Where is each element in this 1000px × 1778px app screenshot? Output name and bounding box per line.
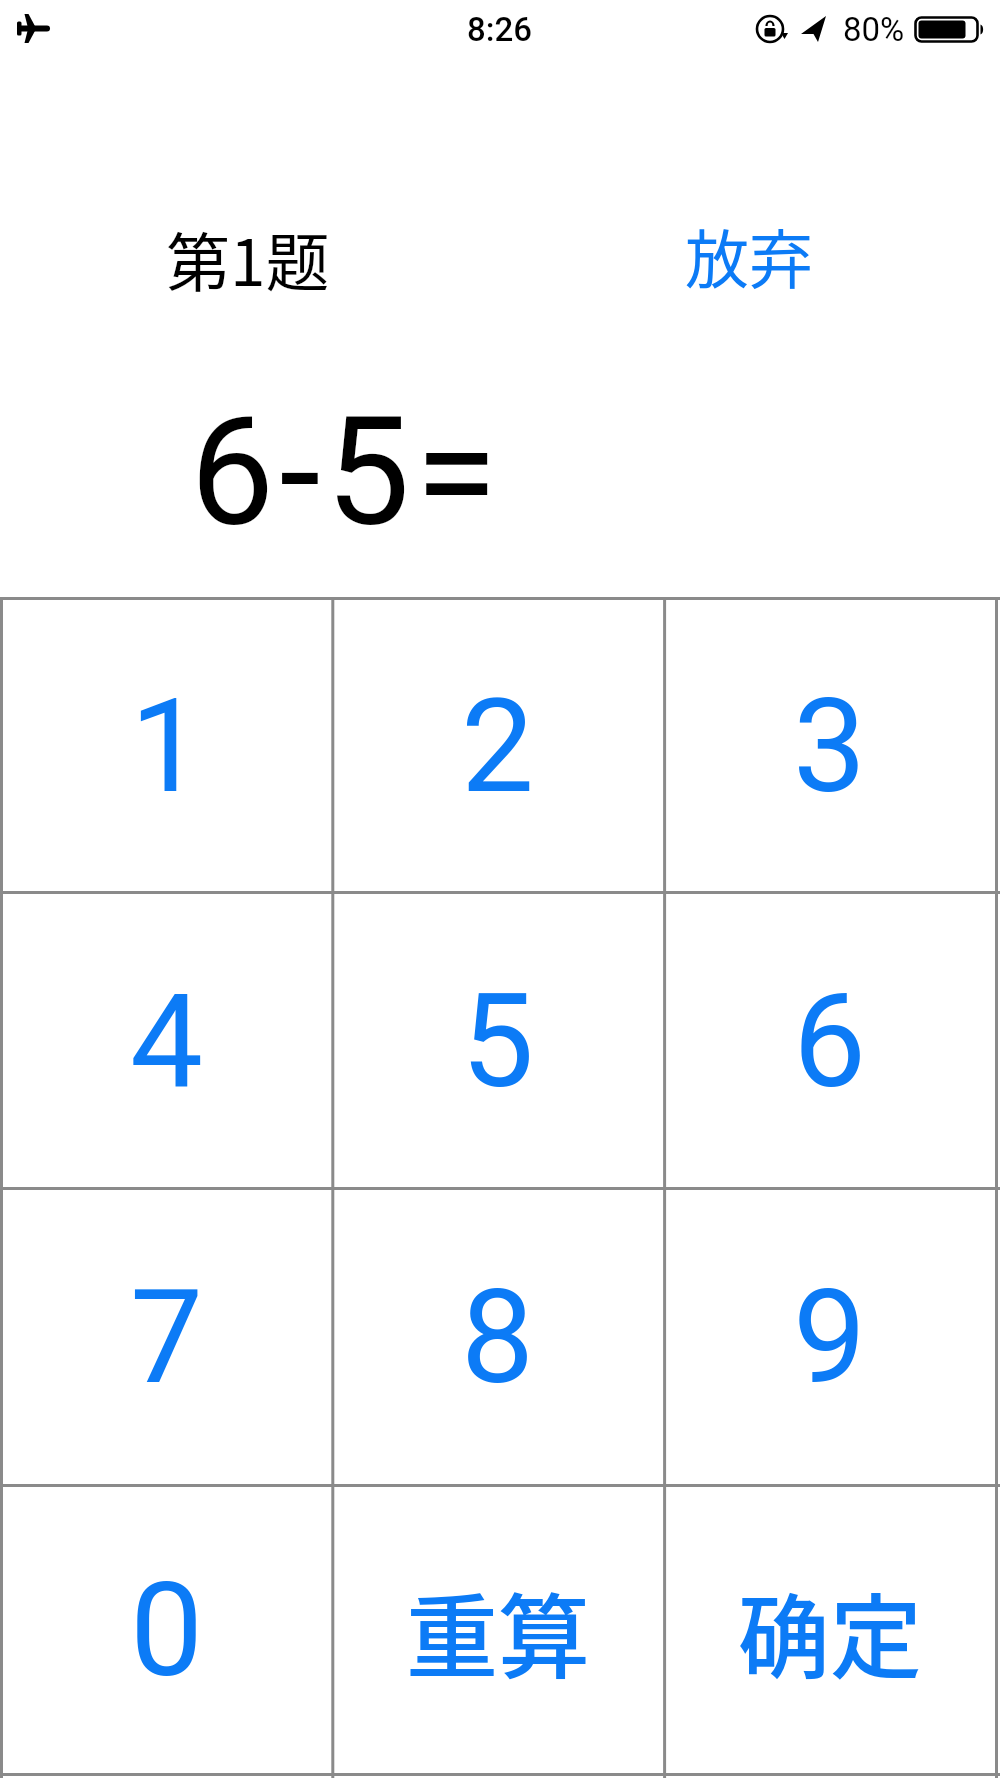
- button[interactable]: 放弃: [685, 209, 825, 301]
- staticText: 5: [461, 965, 535, 1117]
- button[interactable]: 6: [666, 894, 994, 1187]
- button[interactable]: 5: [334, 894, 662, 1187]
- staticText: 3: [793, 670, 867, 822]
- button[interactable]: 8: [334, 1190, 662, 1484]
- staticText: 6-5=: [190, 385, 503, 533]
- button[interactable]: 重算: [334, 1487, 662, 1773]
- staticText: 4: [130, 965, 204, 1117]
- staticText: 80%: [843, 10, 905, 49]
- staticText: 放弃: [685, 209, 813, 301]
- staticText: 8:26: [467, 10, 533, 49]
- button[interactable]: 0: [3, 1487, 331, 1773]
- staticText: 9: [793, 1261, 867, 1413]
- button[interactable]: 7: [3, 1190, 331, 1484]
- staticText: 1: [130, 670, 204, 822]
- button[interactable]: 4: [3, 894, 331, 1187]
- button[interactable]: 2: [334, 600, 662, 891]
- staticText: 7: [130, 1261, 204, 1413]
- staticText: 确定: [738, 1564, 923, 1697]
- button[interactable]: 3: [666, 600, 994, 891]
- staticText: 0: [130, 1554, 204, 1706]
- staticText: 2: [461, 670, 535, 822]
- button[interactable]: 确定: [666, 1487, 994, 1773]
- staticText: 8: [461, 1261, 535, 1413]
- staticText: 重算: [406, 1564, 591, 1697]
- button[interactable]: 9: [666, 1190, 994, 1484]
- staticText: 第1题: [166, 212, 330, 304]
- button[interactable]: 1: [3, 600, 331, 891]
- staticText: 6: [793, 965, 867, 1117]
